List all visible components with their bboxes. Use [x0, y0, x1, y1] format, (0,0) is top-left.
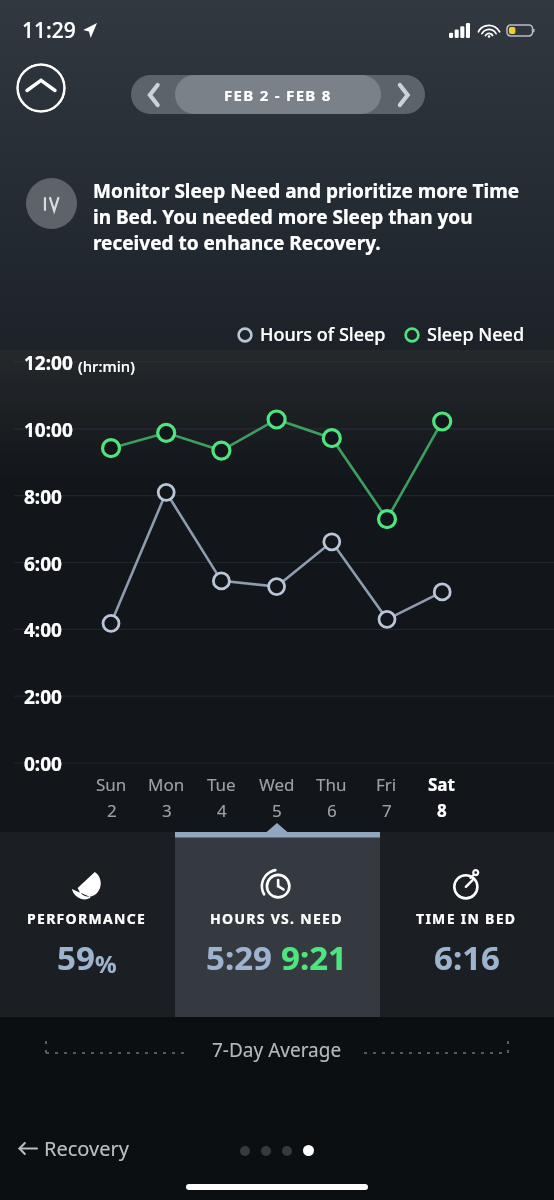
staticText: 4:00: [24, 617, 62, 643]
staticText: 5:29: [206, 935, 272, 980]
button[interactable]: Sun: [84, 773, 139, 822]
button[interactable]: [240, 1146, 250, 1156]
staticText: Wed: [259, 773, 295, 796]
staticText: 6:00: [24, 551, 62, 577]
staticText: 5: [272, 799, 282, 822]
staticText: 2:00: [24, 684, 62, 710]
button[interactable]: Sat: [414, 773, 469, 822]
staticText: Tue: [207, 773, 236, 796]
button[interactable]: [261, 1146, 271, 1156]
staticText: Recovery: [44, 1135, 129, 1162]
button[interactable]: Fri: [359, 773, 414, 822]
staticText: 7-Day Average: [212, 1037, 342, 1063]
staticText: 11:29: [22, 16, 76, 45]
staticText: 2: [107, 799, 117, 822]
button[interactable]: PERFORMANCE: [0, 832, 174, 1017]
staticText: Thu: [316, 773, 347, 796]
staticText: 10:00: [24, 417, 73, 443]
button[interactable]: FEB 2 - FEB 8: [175, 75, 381, 114]
staticText: Hours of Sleep: [260, 322, 386, 347]
staticText: Fri: [376, 773, 397, 796]
staticText: (hr:min): [78, 356, 135, 376]
staticText: 12:00: [24, 350, 73, 376]
staticText: 59: [57, 935, 95, 980]
button[interactable]: Sleep Need: [404, 322, 525, 347]
staticText: 4: [217, 799, 227, 822]
button[interactable]: Mon: [139, 773, 194, 822]
staticText: 0:00: [24, 751, 62, 777]
staticText: Sun: [96, 773, 127, 796]
staticText: %: [95, 947, 117, 980]
button[interactable]: Tue: [194, 773, 249, 822]
button[interactable]: TIME IN BED: [379, 832, 554, 1017]
staticText: Mon: [148, 773, 185, 796]
staticText: Monitor Sleep Need and prioritize more T…: [93, 178, 532, 256]
button[interactable]: Next week: [381, 75, 425, 114]
button[interactable]: [282, 1146, 292, 1156]
staticText: 7: [382, 799, 392, 822]
button[interactable]: Hours of Sleep: [237, 322, 386, 347]
staticText: HOURS VS. NEED: [210, 909, 343, 928]
staticText: 6:16: [434, 935, 500, 980]
staticText: 8:00: [24, 484, 62, 510]
staticText: FEB 2 - FEB 8: [224, 85, 332, 105]
button[interactable]: Recovery: [14, 1131, 133, 1166]
staticText: 3: [162, 799, 172, 822]
button[interactable]: Wed: [249, 773, 304, 822]
button[interactable]: HOURS VS. NEED: [174, 832, 379, 1017]
button[interactable]: Collapse: [16, 63, 66, 113]
staticText: PERFORMANCE: [27, 909, 147, 928]
button[interactable]: Previous week: [131, 75, 175, 114]
button[interactable]: Thu: [304, 773, 359, 822]
staticText: 8: [437, 799, 447, 822]
staticText: Sat: [428, 773, 455, 796]
staticText: Sleep Need: [427, 322, 525, 347]
staticText: 9:21: [281, 935, 347, 980]
button[interactable]: [303, 1145, 314, 1156]
staticText: 6: [327, 799, 337, 822]
staticText: TIME IN BED: [416, 909, 517, 928]
